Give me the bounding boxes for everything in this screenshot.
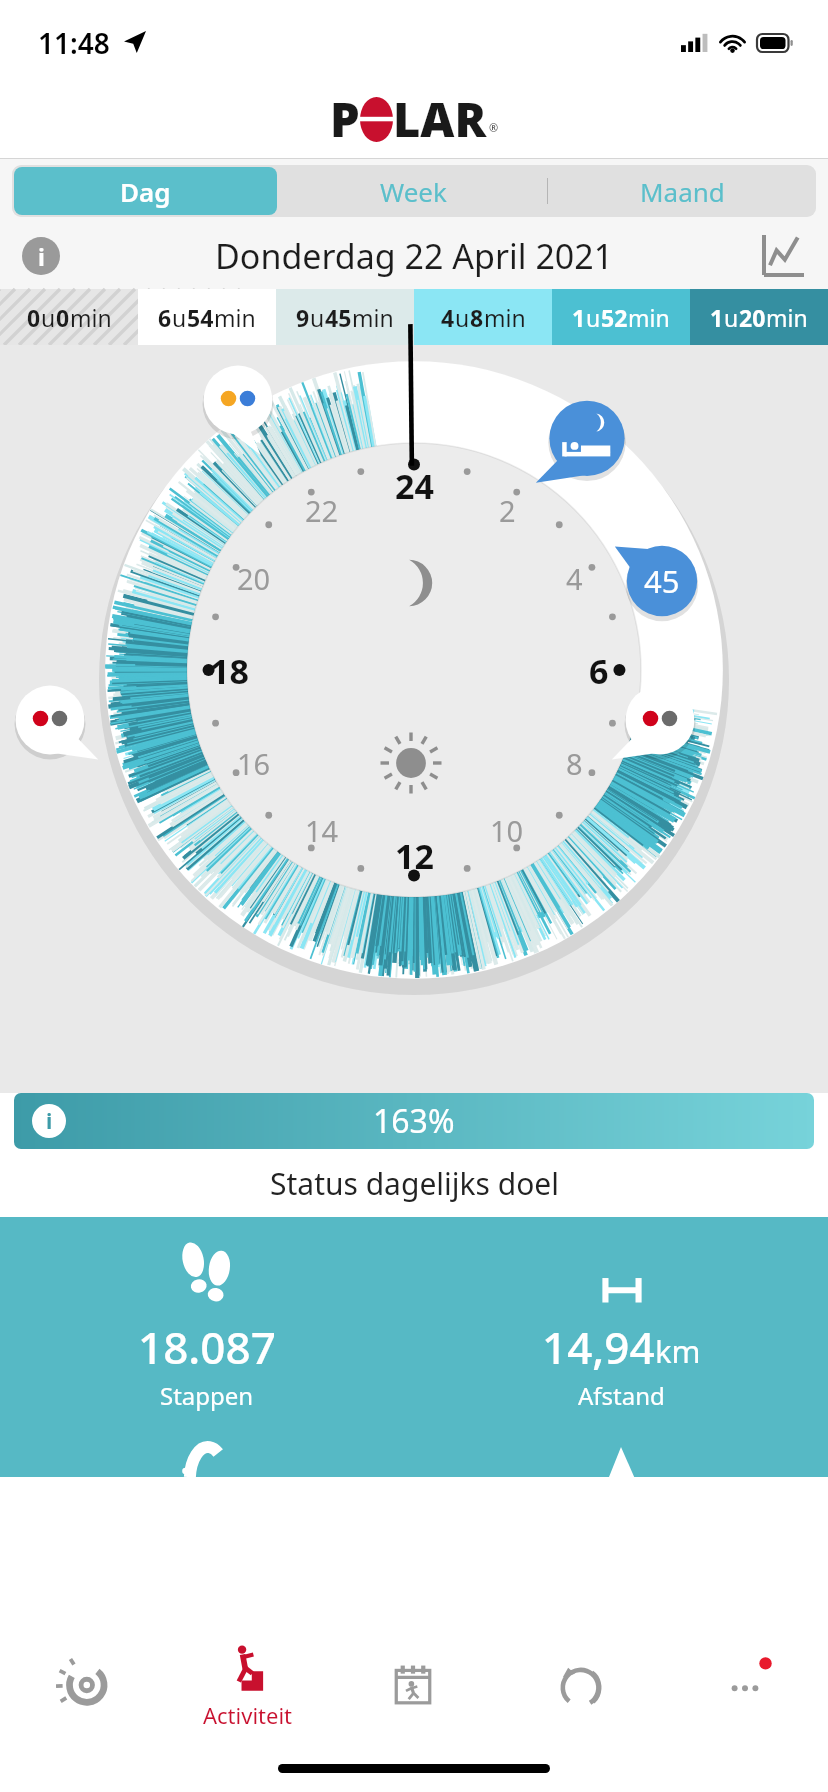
staticText: 8 <box>566 744 583 783</box>
staticText: u <box>586 302 601 333</box>
button[interactable]: 1 <box>690 289 828 345</box>
staticText: 11:48 <box>38 24 110 62</box>
staticText: u <box>455 302 470 333</box>
staticText: min <box>484 302 526 333</box>
staticText: Stappen <box>160 1379 254 1412</box>
button[interactable]: More <box>662 1626 828 1744</box>
staticText: Maand <box>640 174 725 209</box>
staticText: min <box>352 302 394 333</box>
staticText: 9 <box>296 302 310 333</box>
staticText: Status dagelijks doel <box>270 1163 559 1204</box>
button[interactable]: Training <box>330 1626 496 1744</box>
staticText: Dag <box>120 174 171 209</box>
staticText: 6 <box>158 302 172 333</box>
button[interactable]: 0 <box>0 289 138 345</box>
button[interactable]: 6 <box>138 289 276 345</box>
staticText: 12 <box>395 833 434 877</box>
button[interactable]: Week <box>279 165 547 217</box>
button[interactable]: 1 <box>552 289 690 345</box>
staticText: 163% <box>373 1099 455 1143</box>
staticText: 10 <box>490 811 524 850</box>
staticText: 20 <box>739 302 766 333</box>
button[interactable]: Maand <box>548 165 816 217</box>
staticText: 8 <box>470 302 484 333</box>
staticText: km <box>655 1330 701 1372</box>
staticText: 54 <box>187 302 214 333</box>
staticText: Week <box>380 174 447 209</box>
staticText: ® <box>489 120 499 135</box>
staticText: 14,94 <box>542 1317 655 1377</box>
staticText: min <box>766 302 808 333</box>
staticText: 52 <box>601 302 628 333</box>
button[interactable]: 4 <box>414 289 552 345</box>
staticText: 0 <box>56 302 70 333</box>
staticText: Donderdag 22 April 2021 <box>215 233 614 279</box>
staticText: 18.087 <box>138 1317 276 1377</box>
button[interactable]: i <box>14 1093 814 1149</box>
staticText: 18 <box>210 648 249 692</box>
staticText: 45 <box>325 302 352 333</box>
staticText: 24 <box>395 463 434 507</box>
staticText: 6 <box>589 648 609 692</box>
staticText: 16 <box>237 744 271 783</box>
staticText: 22 <box>305 491 339 530</box>
staticText: i <box>46 1107 53 1136</box>
button[interactable]: Activity marker <box>8 683 92 767</box>
staticText: Activiteit <box>203 1700 293 1730</box>
button[interactable]: 18.087 <box>0 1237 414 1412</box>
button[interactable]: Sleep <box>540 397 634 491</box>
button[interactable]: Info <box>22 237 60 275</box>
staticText: Afstand <box>578 1379 665 1412</box>
staticText: 1 <box>710 302 724 333</box>
button[interactable]: Dashboard <box>0 1626 165 1744</box>
staticText: u <box>724 302 739 333</box>
staticText: 0 <box>27 302 41 333</box>
staticText: 4 <box>566 559 583 598</box>
button[interactable]: Activity marker <box>618 683 702 767</box>
button[interactable]: Chart <box>760 233 806 279</box>
staticText: 1 <box>572 302 586 333</box>
staticText: 45 <box>644 560 680 602</box>
staticText: min <box>628 302 670 333</box>
button[interactable]: Activiteit <box>165 1626 330 1744</box>
staticText: LAR <box>393 87 487 151</box>
staticText: u <box>41 302 56 333</box>
staticText: u <box>172 302 187 333</box>
button[interactable]: Activity marker <box>196 363 280 447</box>
staticText: P <box>330 87 360 151</box>
button[interactable]: 14,94 <box>414 1237 828 1412</box>
staticText: min <box>214 302 256 333</box>
button[interactable]: 45 <box>622 541 702 621</box>
staticText: min <box>70 302 112 333</box>
staticText: u <box>310 302 325 333</box>
button[interactable]: Dag <box>14 167 277 215</box>
button[interactable]: Sleep <box>496 1626 662 1744</box>
button[interactable]: 9 <box>276 289 414 345</box>
staticText: 20 <box>237 559 271 598</box>
staticText: 4 <box>441 302 455 333</box>
staticText: i <box>38 241 45 272</box>
staticText: 14 <box>305 811 339 850</box>
staticText: 2 <box>499 491 516 530</box>
